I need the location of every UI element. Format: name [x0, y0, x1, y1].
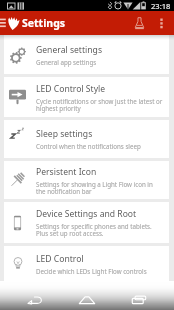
- button[interactable]: LED Control Style: [4, 77, 169, 117]
- staticText: 23:18: [151, 1, 171, 11]
- staticText: LED Control Style: [36, 83, 106, 95]
- button[interactable]: Device Settings and Root: [4, 202, 169, 243]
- button[interactable]: Persistent Icon: [4, 161, 169, 199]
- button[interactable]: More options: [154, 11, 168, 35]
- staticText: Settings for showing a Light Flow icon i…: [36, 180, 153, 195]
- staticText: Settings: [22, 16, 66, 30]
- button[interactable]: Recent apps: [122, 292, 156, 308]
- button[interactable]: Test notification: [131, 11, 147, 35]
- staticText: Sleep settings: [36, 128, 93, 140]
- button[interactable]: General settings: [4, 35, 169, 74]
- staticText: Device Settings and Root: [36, 208, 137, 220]
- button[interactable]: LED Control: [4, 246, 169, 281]
- staticText: Cycle notifications or show just the lat…: [36, 97, 163, 112]
- staticText: Persistent Icon: [36, 166, 97, 178]
- button[interactable]: Navigation drawer: [0, 11, 9, 35]
- staticText: General app settings: [36, 58, 97, 66]
- staticText: Control when the notifications sleep: [36, 142, 141, 150]
- button[interactable]: Sleep settings: [4, 120, 169, 158]
- button[interactable]: Home: [70, 292, 104, 308]
- staticText: LED Control: [36, 253, 84, 265]
- button[interactable]: Back: [18, 292, 52, 308]
- staticText: Decide which LEDs Light Flow controls: [36, 267, 147, 275]
- staticText: General settings: [36, 44, 103, 56]
- staticText: Settings for specific phones and tablets…: [36, 222, 152, 237]
